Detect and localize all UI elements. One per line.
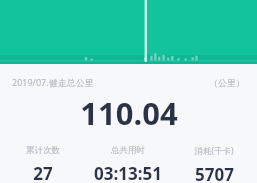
staticText: 累计次数: [26, 145, 60, 156]
staticText: 总共用时: [111, 145, 145, 156]
button[interactable]: 总共用时: [85, 143, 171, 183]
staticText: 消耗(千卡): [194, 145, 234, 157]
staticText: 110.04: [80, 92, 178, 134]
staticText: 27: [33, 162, 53, 181]
staticText: 2019/07.健走总公里: [12, 76, 94, 88]
staticText: 5707: [195, 163, 234, 181]
button[interactable]: Walking chart: [0, 0, 257, 64]
staticText: （公里）: [209, 77, 245, 88]
button[interactable]: 累计次数: [0, 143, 85, 183]
button[interactable]: 消耗(千卡): [171, 143, 257, 183]
staticText: 03:13:51: [94, 162, 162, 181]
